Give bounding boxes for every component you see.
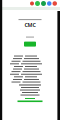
- staticText: CMC: [24, 21, 35, 29]
